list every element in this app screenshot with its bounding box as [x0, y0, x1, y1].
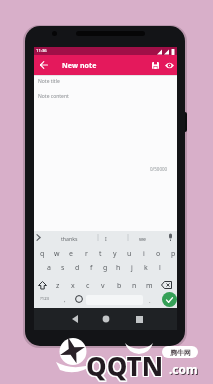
button[interactable]: e	[61, 247, 81, 261]
staticText: QQTN	[86, 348, 164, 383]
staticText: a	[47, 263, 51, 273]
button[interactable]: I	[96, 231, 116, 245]
staticText: v	[101, 281, 105, 291]
button[interactable]: j	[122, 261, 142, 275]
button[interactable]	[161, 281, 172, 289]
button[interactable]: t	[90, 247, 110, 261]
staticText: u	[127, 249, 132, 259]
staticText: .	[149, 297, 151, 305]
staticText: QQTN	[85, 349, 163, 384]
staticText: ?123	[40, 296, 50, 302]
button[interactable]	[34, 75, 177, 89]
staticText: b	[117, 281, 122, 291]
button[interactable]: ?123	[35, 292, 55, 306]
staticText: l	[159, 263, 161, 273]
staticText: Note content	[38, 93, 69, 100]
button[interactable]	[75, 295, 83, 303]
button[interactable]: b	[109, 279, 129, 293]
staticText: QQTN	[86, 347, 164, 382]
button[interactable]: thanks	[59, 231, 79, 245]
button[interactable]: r	[76, 247, 96, 261]
staticText: o	[156, 249, 161, 259]
staticText: QQTN	[85, 347, 163, 382]
staticText: Note title	[38, 78, 60, 85]
button[interactable]: c	[78, 279, 98, 293]
staticText: x	[71, 281, 75, 291]
button[interactable]: h	[108, 261, 128, 275]
button[interactable]: d	[67, 261, 87, 275]
staticText: QQTN	[87, 349, 165, 384]
button[interactable]: u	[119, 247, 139, 261]
staticText: we	[139, 235, 147, 242]
staticText: k	[144, 263, 148, 273]
staticText: i	[143, 249, 145, 259]
button[interactable]: n	[124, 279, 144, 293]
button[interactable]	[38, 281, 47, 290]
staticText: f	[90, 263, 93, 273]
staticText: ,	[64, 296, 66, 304]
staticText: QQTN	[85, 348, 163, 383]
button[interactable]: .	[140, 294, 160, 308]
staticText: e	[69, 249, 73, 259]
staticText: c	[86, 281, 90, 291]
button[interactable]: x	[63, 279, 83, 293]
staticText: y	[113, 249, 117, 259]
button[interactable]: l	[150, 261, 170, 275]
staticText: g	[103, 263, 108, 273]
button[interactable]	[149, 59, 161, 71]
button[interactable]: p	[163, 247, 183, 261]
staticText: QQTN	[87, 347, 165, 382]
button[interactable]: we	[133, 231, 153, 245]
staticText: QQTN	[87, 348, 165, 383]
staticText: QQTN	[86, 349, 164, 384]
button[interactable]: a	[39, 261, 59, 275]
staticText: 腾牛网	[170, 348, 191, 357]
button[interactable]: z	[48, 279, 68, 293]
staticText: p	[171, 249, 176, 259]
button[interactable]	[34, 89, 177, 173]
button[interactable]: y	[105, 247, 125, 261]
staticText: q	[40, 249, 45, 259]
staticText: m	[146, 281, 153, 291]
button[interactable]: o	[148, 247, 168, 261]
staticText: t	[99, 249, 102, 259]
staticText: d	[75, 263, 80, 273]
button[interactable]	[131, 311, 147, 327]
staticText: .com	[169, 361, 198, 377]
staticText: I	[105, 235, 107, 242]
staticText: r	[85, 249, 88, 259]
staticText: j	[131, 263, 133, 273]
staticText: thanks	[61, 235, 78, 242]
button[interactable]	[98, 311, 114, 327]
staticText: n	[132, 281, 137, 291]
button[interactable]: ,	[55, 293, 75, 307]
staticText: 0/50000	[150, 166, 168, 172]
button[interactable]	[38, 59, 50, 71]
button[interactable]: i	[134, 247, 154, 261]
staticText: z	[56, 281, 60, 291]
staticText: .com	[170, 362, 199, 378]
button[interactable]: q	[32, 247, 52, 261]
staticText: s	[61, 263, 65, 273]
button[interactable]: k	[136, 261, 156, 275]
button[interactable]: s	[53, 261, 73, 275]
button[interactable]: v	[93, 279, 113, 293]
button[interactable]	[163, 59, 175, 71]
staticText: w	[54, 249, 60, 259]
staticText: 11:36	[36, 48, 47, 54]
button[interactable]: w	[47, 247, 67, 261]
button[interactable]: m	[139, 279, 159, 293]
button[interactable]	[67, 311, 83, 327]
button[interactable]: g	[95, 261, 115, 275]
staticText: New note	[62, 61, 97, 71]
button[interactable]: f	[81, 261, 101, 275]
staticText: h	[116, 263, 121, 273]
button[interactable]	[162, 292, 177, 307]
